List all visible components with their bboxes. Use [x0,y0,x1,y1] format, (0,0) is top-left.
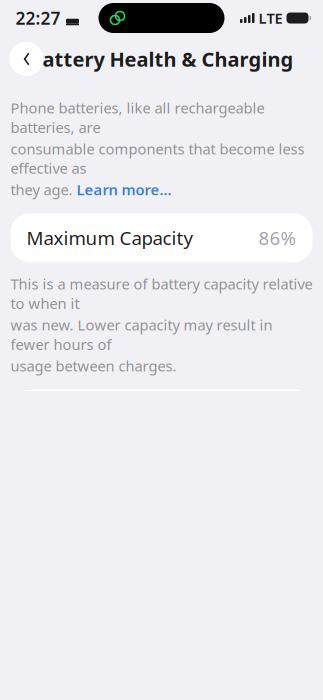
staticText: Phone batteries, like all rechargeable b… [10,98,264,137]
staticText: LTE [258,8,282,28]
staticText: Battery Health & Charging [29,46,293,72]
staticText: Maximum Capacity [26,225,193,250]
staticText: 22:27 [15,6,60,29]
button[interactable]: Back [9,42,43,76]
staticText: was new. Lower capacity may result in fe… [10,315,272,354]
staticText: This is a measure of battery capacity re… [10,274,312,313]
staticText: Learn more... [76,180,171,199]
staticText: they age. [10,180,72,199]
staticText: consumable components that become less e… [10,139,304,178]
staticText: usage between charges. [10,356,176,376]
staticText: 86% [258,225,296,250]
button[interactable]: Learn more... [76,180,171,199]
